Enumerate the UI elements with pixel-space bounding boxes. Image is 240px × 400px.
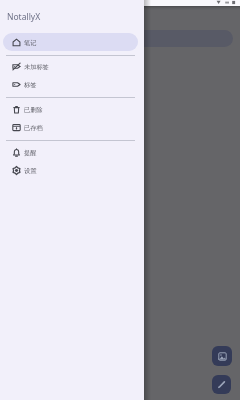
button[interactable]: 设置 [3, 161, 138, 179]
button[interactable]: Add image note [212, 346, 232, 366]
button[interactable]: New note [212, 375, 231, 394]
button[interactable]: 未加标签 [3, 57, 138, 75]
button[interactable]: 标签 [3, 75, 138, 93]
staticText: 未加标签 [24, 63, 49, 71]
staticText: 已存档 [24, 124, 43, 132]
staticText: 提醒 [24, 149, 37, 157]
staticText: 设置 [24, 167, 37, 175]
staticText: 标签 [24, 81, 37, 89]
button[interactable]: 已存档 [3, 118, 138, 136]
button[interactable]: 已删除 [3, 100, 138, 118]
button[interactable]: 笔记 [3, 33, 138, 51]
staticText: NotallyX [7, 11, 41, 23]
staticText: 已删除 [24, 106, 43, 114]
staticText: 笔记 [24, 39, 37, 47]
button[interactable]: 提醒 [3, 143, 138, 161]
